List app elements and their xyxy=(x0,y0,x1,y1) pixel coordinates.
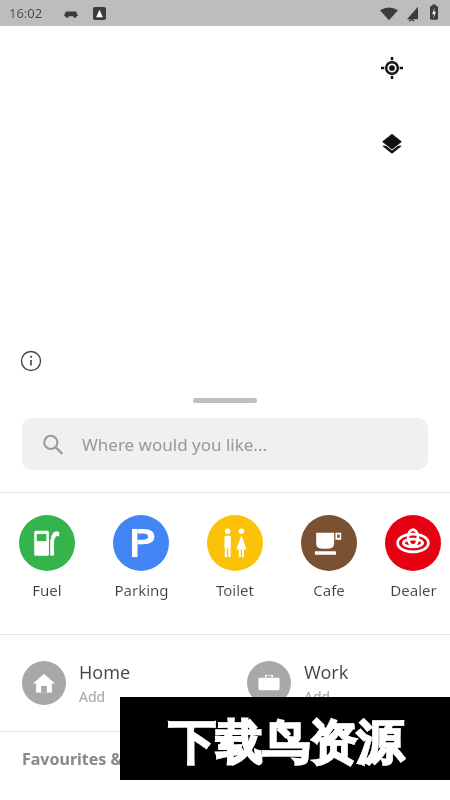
staticText: Cafe xyxy=(313,580,345,600)
button[interactable]: Where would you like... xyxy=(22,418,428,470)
button[interactable]: Map layers xyxy=(370,121,414,165)
staticText: Work xyxy=(304,660,349,685)
button[interactable]: Cafe xyxy=(282,515,376,600)
staticText: 下载鸟资源 xyxy=(168,714,403,773)
staticText: Fuel xyxy=(32,580,62,600)
button[interactable]: Work xyxy=(247,635,450,731)
staticText: Add xyxy=(304,687,331,706)
button[interactable]: Home xyxy=(22,635,225,731)
button[interactable]: Toilet xyxy=(188,515,282,600)
button[interactable]: Fuel xyxy=(0,515,94,600)
staticText: Toilet xyxy=(216,580,254,600)
staticText: Add xyxy=(79,687,106,706)
staticText: Home xyxy=(79,660,131,685)
staticText: Favourites & trips xyxy=(22,748,164,770)
button[interactable]: Dealer xyxy=(376,515,450,600)
button[interactable]: Parking xyxy=(94,515,188,600)
button[interactable]: My location xyxy=(370,46,414,90)
staticText: Where would you like... xyxy=(82,433,267,456)
staticText: Dealer xyxy=(390,580,437,600)
staticText: 16:02 xyxy=(9,4,43,22)
staticText: Parking xyxy=(114,580,169,600)
button[interactable]: Map information xyxy=(20,350,42,372)
